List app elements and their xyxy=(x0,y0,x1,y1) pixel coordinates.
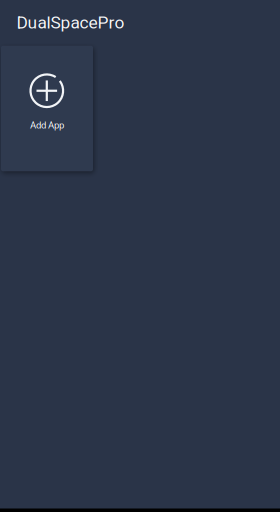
staticText: Add App xyxy=(30,120,64,131)
button[interactable]: Add App xyxy=(1,46,93,171)
staticText: DualSpacePro xyxy=(16,12,124,33)
